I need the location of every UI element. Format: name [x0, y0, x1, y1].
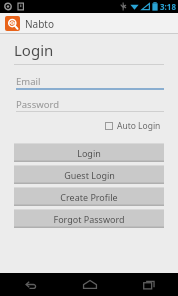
button[interactable]: Create Profile: [14, 187, 164, 206]
button[interactable]: Forgot Password: [14, 209, 164, 228]
button[interactable]: Recent apps: [119, 273, 178, 296]
staticText: 3:18: [160, 1, 176, 12]
staticText: Nabto: [25, 17, 55, 31]
staticText: Guest Login: [64, 169, 115, 181]
staticText: Email: [16, 75, 41, 88]
button[interactable]: Home: [60, 273, 119, 296]
staticText: Password: [16, 98, 59, 111]
staticText: Forgot Password: [53, 213, 125, 225]
staticText: Login: [77, 147, 101, 159]
button[interactable]: Back: [0, 273, 60, 296]
button[interactable]: Guest Login: [14, 165, 164, 184]
staticText: Auto Login: [117, 120, 161, 132]
button[interactable]: Login: [14, 143, 164, 162]
button[interactable]: Auto Login: [102, 117, 164, 135]
staticText: Login: [14, 40, 54, 60]
staticText: Create Profile: [60, 191, 118, 203]
